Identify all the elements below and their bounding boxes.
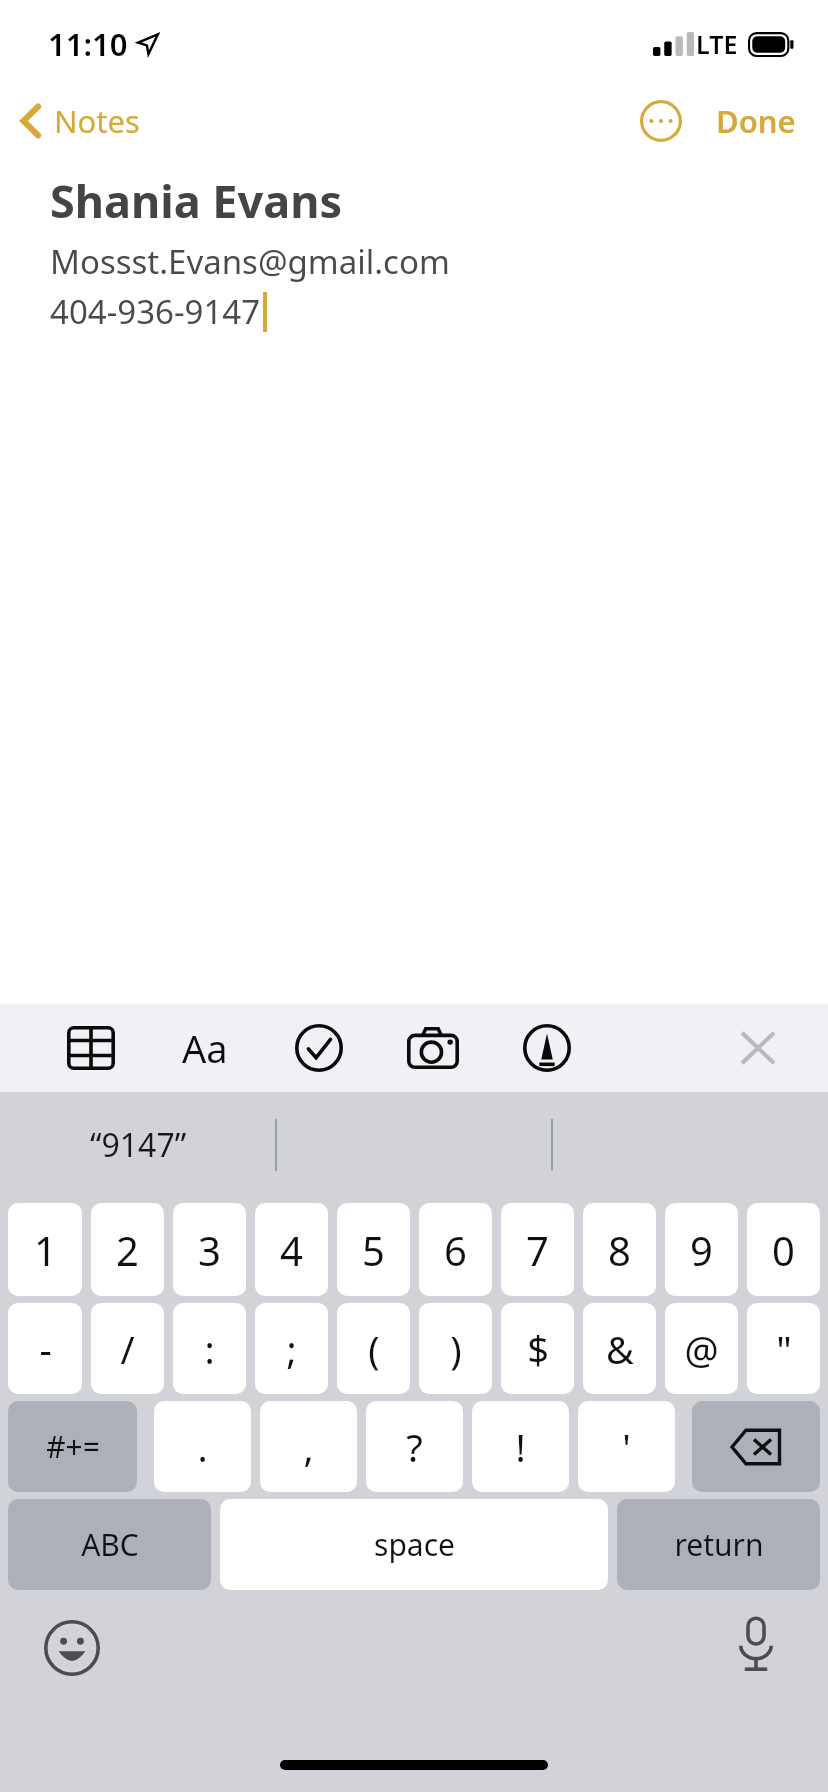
staticText: 404-936-9147 — [50, 289, 261, 334]
staticText: Notes — [54, 100, 140, 142]
button[interactable]: & — [583, 1303, 656, 1394]
button[interactable]: Text format — [174, 1017, 236, 1079]
button[interactable]: Close keyboard — [728, 1018, 788, 1078]
staticText: 11:10 — [48, 23, 128, 65]
staticText: 2 — [116, 1223, 139, 1277]
button[interactable]: 2 — [91, 1203, 164, 1296]
button[interactable]: Notes — [0, 94, 156, 148]
staticText: 6 — [444, 1223, 467, 1277]
button[interactable]: , — [260, 1401, 357, 1492]
button[interactable]: Camera — [402, 1017, 464, 1079]
button[interactable]: #+= — [8, 1401, 137, 1492]
staticText: ' — [622, 1421, 631, 1473]
button[interactable]: " — [747, 1303, 820, 1394]
button[interactable]: ? — [366, 1401, 463, 1492]
button[interactable]: Emoji keyboard — [36, 1612, 108, 1684]
staticText: ) — [450, 1323, 462, 1375]
staticText: ( — [368, 1323, 380, 1375]
staticText: “9147” — [90, 1123, 187, 1167]
staticText: 1 — [34, 1223, 57, 1277]
button[interactable]: 6 — [419, 1203, 492, 1296]
staticText: " — [776, 1323, 792, 1375]
button[interactable]: Done — [706, 92, 828, 150]
staticText: 0 — [772, 1223, 795, 1277]
staticText: 8 — [608, 1223, 631, 1277]
staticText: ; — [286, 1323, 297, 1375]
button[interactable]: . — [154, 1401, 251, 1492]
button[interactable]: 7 — [501, 1203, 574, 1296]
staticText: 3 — [198, 1223, 221, 1277]
staticText: Done — [716, 100, 796, 142]
button[interactable]: $ — [501, 1303, 574, 1394]
button[interactable]: - — [8, 1303, 82, 1394]
button[interactable]: Backspace — [692, 1401, 820, 1492]
button[interactable]: 3 — [173, 1203, 246, 1296]
button[interactable]: Markup — [516, 1017, 578, 1079]
button[interactable]: space — [220, 1499, 608, 1590]
button[interactable]: @ — [665, 1303, 738, 1394]
button[interactable]: ) — [419, 1303, 492, 1394]
staticText: 9 — [690, 1223, 713, 1277]
staticText: $ — [527, 1323, 549, 1375]
button[interactable]: 1 — [8, 1203, 82, 1296]
button[interactable]: ! — [472, 1401, 569, 1492]
staticText: 5 — [362, 1223, 385, 1277]
staticText: ? — [406, 1421, 423, 1473]
staticText: - — [39, 1323, 52, 1375]
button[interactable]: 5 — [337, 1203, 410, 1296]
button[interactable]: ; — [255, 1303, 328, 1394]
button[interactable]: : — [173, 1303, 246, 1394]
button[interactable]: 8 — [583, 1203, 656, 1296]
button[interactable]: 0 — [747, 1203, 820, 1296]
button[interactable]: ( — [337, 1303, 410, 1394]
button[interactable]: 9 — [665, 1203, 738, 1296]
staticText: @ — [684, 1323, 719, 1375]
button[interactable]: return — [617, 1499, 820, 1590]
staticText: , — [303, 1421, 314, 1473]
staticText: : — [204, 1323, 215, 1375]
staticText: ABC — [81, 1524, 139, 1565]
button[interactable]: More options — [628, 88, 694, 154]
button[interactable]: Dictation — [728, 1608, 784, 1680]
button[interactable]: / — [91, 1303, 164, 1394]
staticText: 4 — [280, 1223, 303, 1277]
staticText: ! — [515, 1421, 526, 1473]
staticText: #+= — [46, 1426, 100, 1467]
button[interactable]: ABC — [8, 1499, 211, 1590]
staticText: Aa — [182, 1022, 228, 1074]
staticText: Mossst.Evans@gmail.com — [50, 239, 450, 284]
staticText: space — [374, 1524, 455, 1565]
staticText: Shania Evans — [50, 170, 343, 231]
button[interactable]: 4 — [255, 1203, 328, 1296]
staticText: / — [120, 1323, 135, 1375]
staticText: 7 — [526, 1223, 549, 1277]
button[interactable]: Table — [60, 1017, 122, 1079]
staticText: . — [197, 1421, 208, 1473]
button[interactable]: Checklist — [288, 1017, 350, 1079]
staticText: & — [606, 1323, 634, 1375]
button[interactable]: ' — [578, 1401, 675, 1492]
staticText: return — [674, 1524, 764, 1565]
staticText: LTE — [696, 27, 738, 61]
